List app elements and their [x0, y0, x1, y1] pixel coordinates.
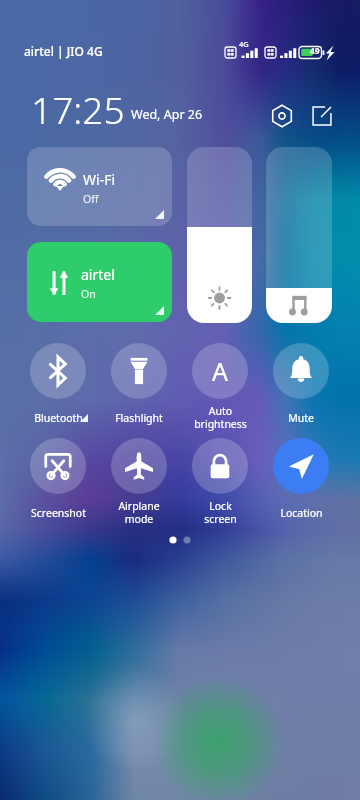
staticText: 49 [310, 45, 320, 57]
button[interactable]: Settings [266, 100, 298, 132]
staticText: Bluetooth [34, 411, 83, 425]
button[interactable]: Bluetooth [30, 343, 86, 399]
button[interactable]: Mute [273, 343, 329, 399]
staticText: Airplane mode [118, 499, 160, 526]
staticText: Auto brightness [194, 404, 247, 431]
button[interactable]: Edit quick settings [306, 100, 338, 132]
button[interactable]: Screenshot [30, 438, 86, 494]
button[interactable]: Volume [266, 147, 332, 323]
staticText: 4G [239, 39, 249, 49]
staticText: 17:25 [31, 84, 125, 134]
staticText: A [212, 354, 228, 388]
staticText: Mute [288, 411, 314, 425]
staticText: Flashlight [115, 411, 163, 425]
button[interactable]: airtel [27, 242, 172, 322]
button[interactable]: Lock screen [192, 438, 248, 494]
button[interactable]: Airplane mode [111, 438, 167, 494]
button[interactable]: Auto brightness [192, 343, 248, 399]
button[interactable]: Location [273, 438, 329, 494]
button[interactable]: Brightness [187, 147, 252, 323]
button[interactable]: Wi-Fi [27, 147, 172, 226]
staticText: Off [83, 192, 99, 206]
staticText: Lock screen [204, 499, 237, 526]
staticText: Screenshot [31, 506, 86, 520]
staticText: Location [280, 506, 323, 520]
staticText: Wed, Apr 26 [131, 106, 203, 123]
staticText: Wi-Fi [83, 170, 116, 189]
staticText: airtel [81, 265, 115, 284]
button[interactable]: Flashlight [111, 343, 167, 399]
staticText: airtel | JIO 4G [24, 43, 103, 59]
staticText: On [81, 287, 96, 301]
